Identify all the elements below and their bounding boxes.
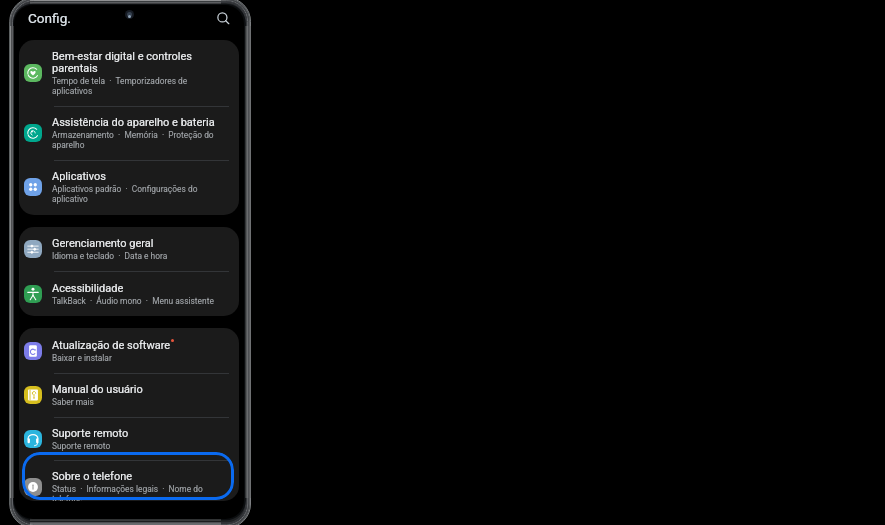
staticText: TalkBack · Áudio mono · Menu assistente — [52, 296, 214, 306]
button[interactable]: Assistência do aparelho e bateria — [19, 106, 239, 160]
staticText: Aplicativos — [52, 170, 106, 183]
staticText: Suporte remoto — [52, 427, 129, 440]
staticText: Suporte remoto — [52, 441, 111, 451]
button[interactable]: Config. — [28, 10, 71, 26]
staticText: Assistência do aparelho e bateria — [52, 116, 215, 129]
staticText: Manual do usuário — [52, 383, 143, 396]
button[interactable]: Manual do usuário — [19, 373, 239, 417]
staticText: Sobre o telefone — [52, 470, 133, 483]
button[interactable]: Atualização de software — [19, 328, 239, 373]
button[interactable]: Bem-estar digital e controles parentais — [19, 40, 239, 106]
staticText: Config. — [28, 10, 71, 26]
staticText: Status · Informações legais · Nome do te… — [52, 484, 222, 501]
staticText: Armazenamento · Memória · Proteção do ap… — [52, 130, 222, 150]
button[interactable] — [22, 452, 234, 500]
staticText: Idioma e teclado · Data e hora — [52, 251, 168, 261]
staticText: Gerenciamento geral — [52, 237, 154, 250]
button[interactable]: Suporte remoto — [19, 417, 239, 460]
button[interactable]: Gerenciamento geral — [19, 227, 239, 271]
staticText: Tempo de tela · Temporizadores de aplica… — [52, 76, 222, 96]
staticText: Atualização de software — [52, 339, 171, 352]
staticText: Baixar e instalar — [52, 353, 112, 363]
staticText: Bem-estar digital e controles parentais — [52, 50, 222, 75]
button[interactable]: Aplicativos — [19, 160, 239, 214]
button[interactable]: Pesquisar — [210, 5, 236, 31]
staticText: Aplicativos padrão · Configurações do ap… — [52, 184, 222, 204]
staticText: Saber mais — [52, 397, 94, 407]
staticText: Acessibilidade — [52, 282, 124, 295]
button[interactable]: Acessibilidade — [19, 271, 239, 316]
button[interactable]: Sobre o telefone — [19, 460, 239, 501]
